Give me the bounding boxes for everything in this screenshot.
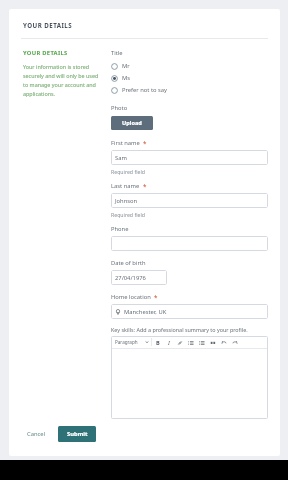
staticText: Home location (111, 293, 151, 301)
staticText: Sam (115, 154, 127, 162)
staticText: Upload (122, 119, 142, 127)
button[interactable]: Redo (229, 337, 240, 348)
staticText: Photo (111, 104, 128, 112)
button[interactable]: Submit (58, 426, 96, 442)
staticText: * (154, 293, 158, 301)
staticText: Cancel (27, 430, 46, 438)
staticText: Last name (111, 182, 140, 190)
staticText: * (143, 139, 147, 147)
staticText: Date of birth (111, 259, 146, 267)
staticText: 27/04/1976 (115, 274, 146, 282)
button[interactable]: Mr (111, 60, 268, 72)
button[interactable] (111, 236, 268, 251)
staticText: Submit (67, 430, 88, 438)
staticText: Phone (111, 225, 129, 233)
button[interactable]: Numbered list (196, 337, 207, 348)
button[interactable]: 27/04/1976 (111, 270, 167, 285)
staticText: B (156, 339, 160, 347)
staticText: I (168, 339, 170, 347)
button[interactable]: Block quote (207, 337, 218, 348)
button[interactable]: Undo (218, 337, 229, 348)
button[interactable]: Ms (111, 72, 268, 84)
button[interactable]: Insert link (174, 337, 185, 348)
button[interactable]: Prefer not to say (111, 84, 268, 96)
staticText: Manchester, UK (124, 308, 167, 316)
button[interactable]: Cancel (23, 426, 50, 442)
staticText: Required field (111, 211, 145, 218)
staticText: * (143, 182, 147, 190)
button[interactable]: Paragraph (113, 339, 151, 345)
staticText: Prefer not to say (122, 86, 168, 94)
staticText: Key skills: Add a professional summary t… (111, 326, 248, 333)
button[interactable]: Sam (111, 150, 268, 165)
staticText: YOUR DETAILS (23, 49, 68, 57)
staticText: Required field (111, 168, 145, 175)
staticText: Ms (122, 74, 131, 82)
staticText: Mr (122, 62, 130, 70)
button[interactable]: B (152, 337, 163, 348)
button[interactable]: Bulleted list (185, 337, 196, 348)
button[interactable] (111, 349, 268, 419)
button[interactable]: I (163, 337, 174, 348)
staticText: Title (111, 49, 123, 57)
button[interactable]: Johnson (111, 193, 268, 208)
button[interactable]: Manchester, UK (111, 304, 268, 319)
staticText: Your information is stored securely and … (23, 63, 101, 98)
staticText: Paragraph (115, 339, 138, 345)
staticText: Johnson (115, 197, 138, 205)
staticText: YOUR DETAILS (23, 21, 73, 29)
button[interactable]: Upload (111, 116, 153, 130)
staticText: First name (111, 139, 140, 147)
